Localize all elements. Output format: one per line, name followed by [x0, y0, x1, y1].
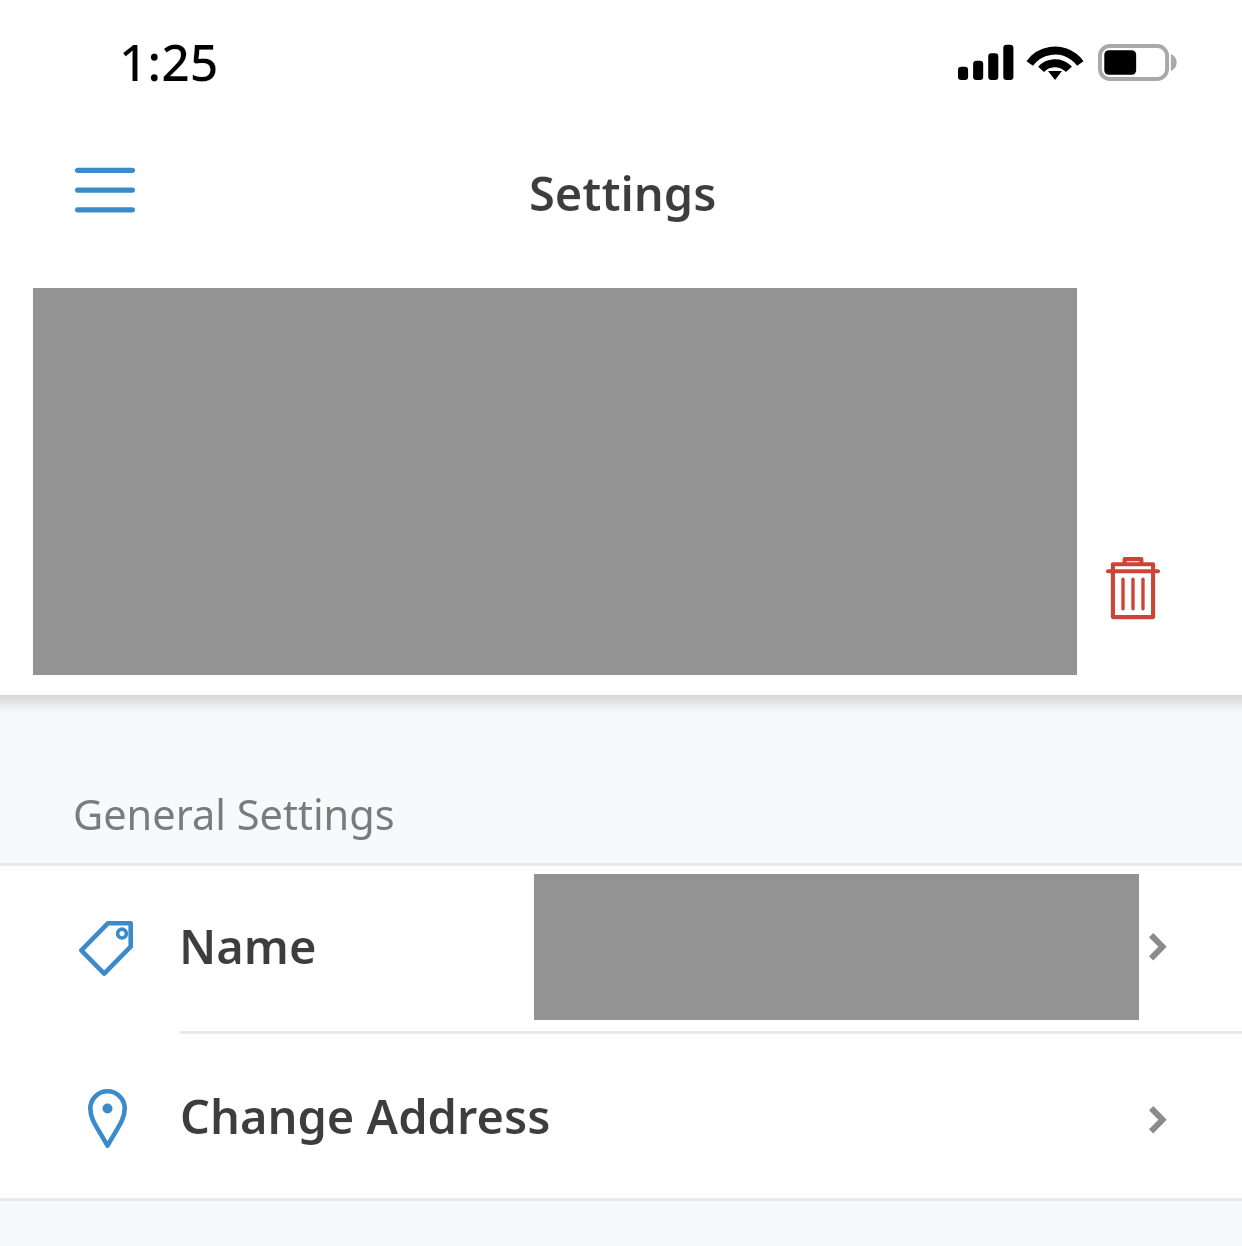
- button[interactable]: Change Address: [0, 1034, 1242, 1200]
- button[interactable]: Menu: [55, 150, 155, 232]
- staticText: Settings: [529, 161, 717, 225]
- button[interactable]: Name: [0, 866, 1242, 1031]
- staticText: 1:25: [119, 28, 219, 96]
- button[interactable]: Delete: [1089, 543, 1177, 633]
- staticText: Name: [179, 914, 317, 978]
- staticText: General Settings: [73, 786, 395, 843]
- staticText: Change Address: [180, 1084, 551, 1148]
